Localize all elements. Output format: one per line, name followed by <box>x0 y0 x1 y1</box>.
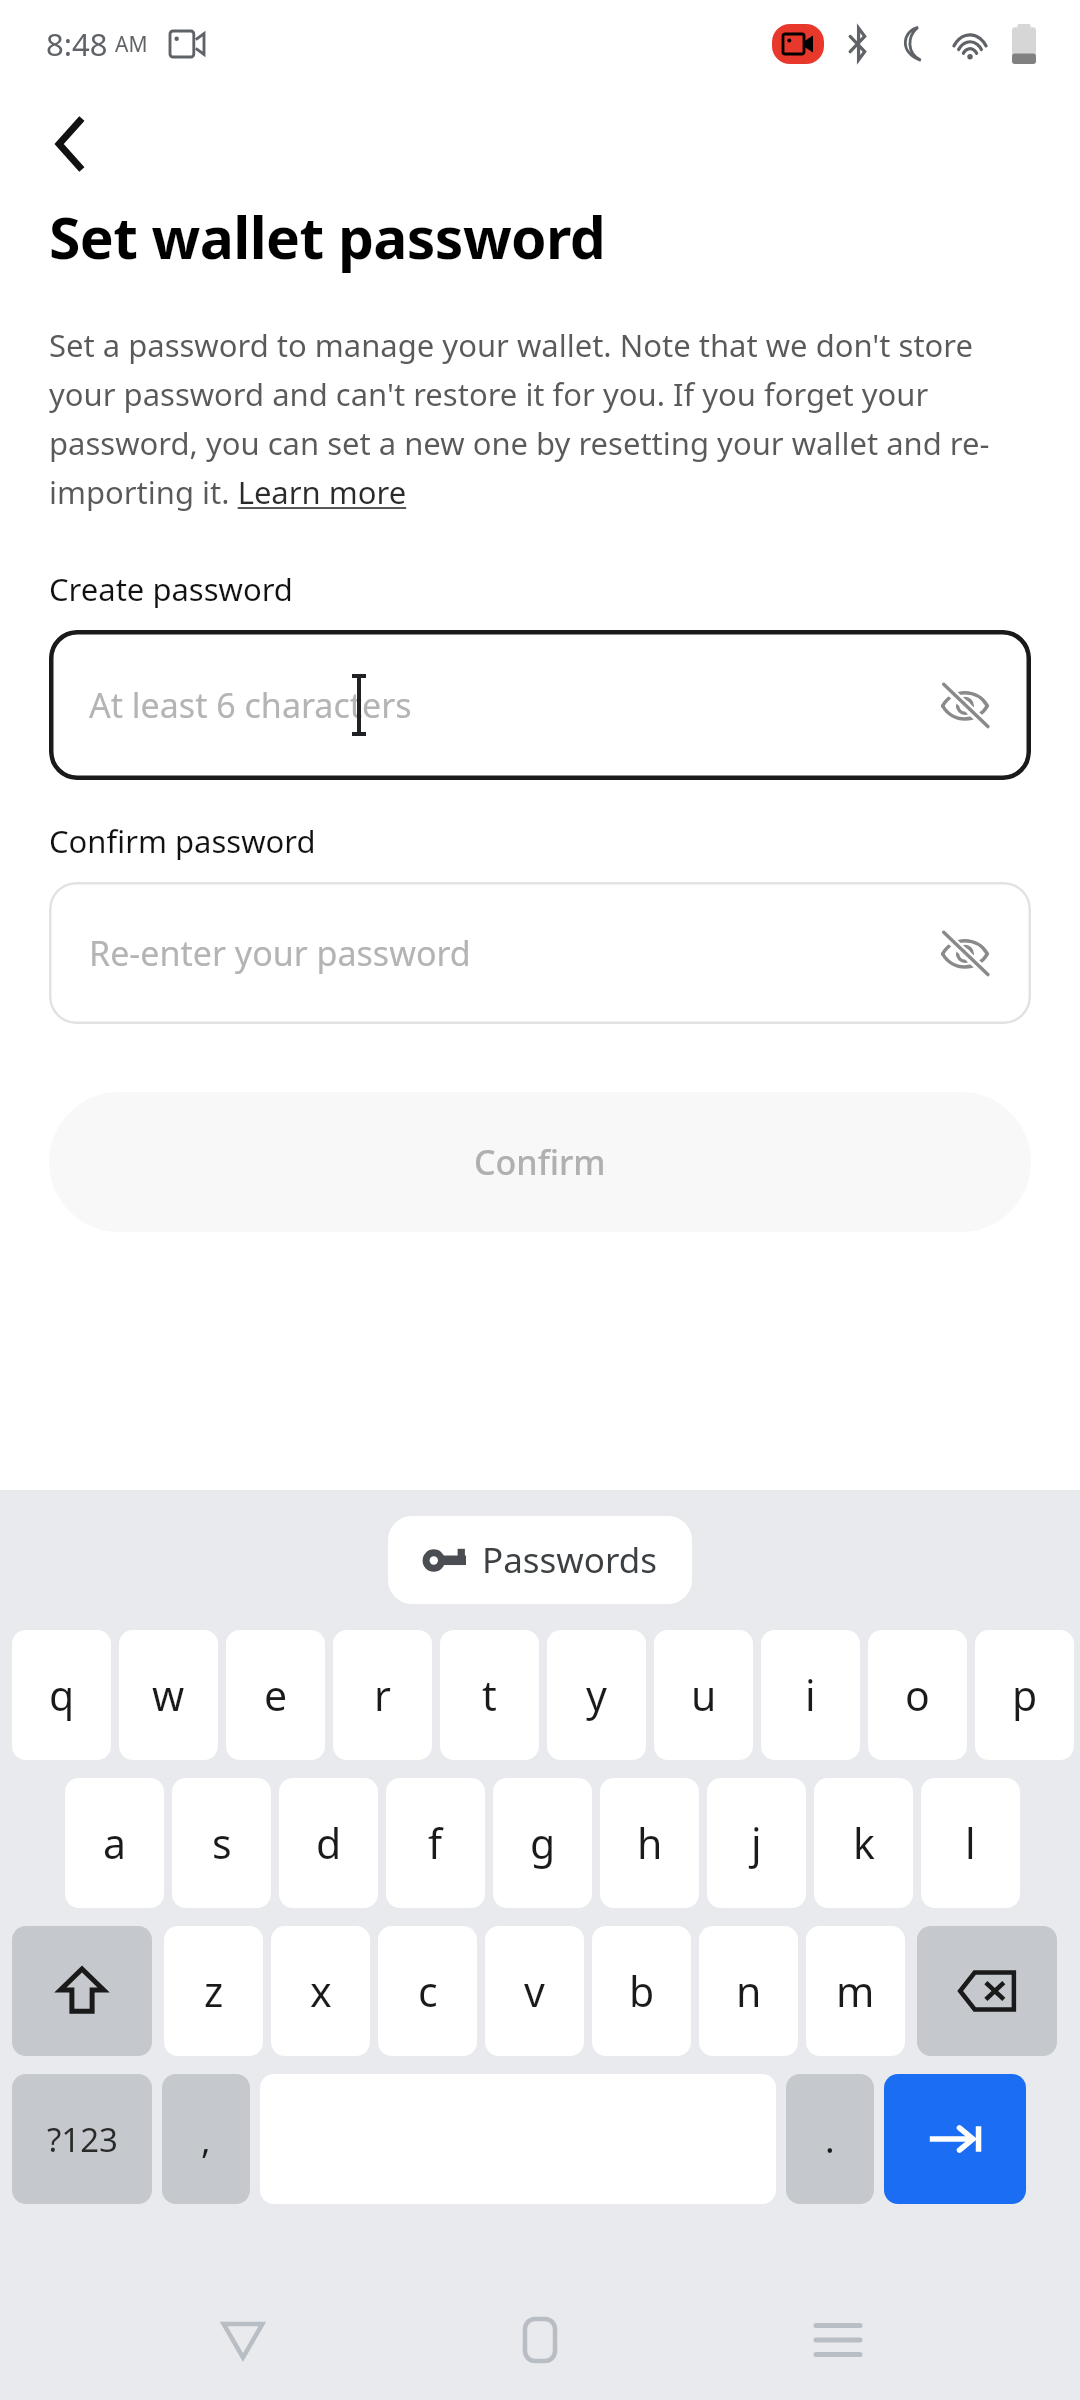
staticText: Confirm password <box>49 820 316 862</box>
staticText: Set wallet password <box>49 198 606 276</box>
button[interactable]: l <box>921 1778 1020 1908</box>
button[interactable]: v <box>485 1926 584 2056</box>
button[interactable]: Show password <box>923 663 1007 747</box>
button[interactable]: r <box>333 1630 432 1760</box>
staticText: . <box>825 2115 835 2164</box>
button[interactable]: i <box>761 1630 860 1760</box>
button[interactable]: d <box>279 1778 378 1908</box>
button[interactable]: w <box>119 1630 218 1760</box>
button[interactable]: m <box>806 1926 905 2056</box>
staticText: l <box>965 1815 976 1871</box>
staticText: Create password <box>49 568 293 610</box>
button[interactable]: f <box>386 1778 485 1908</box>
staticText: x <box>310 1963 332 2019</box>
button[interactable]: z <box>164 1926 263 2056</box>
button[interactable]: h <box>600 1778 699 1908</box>
staticText: p <box>1012 1667 1038 1723</box>
button[interactable]: a <box>65 1778 164 1908</box>
button[interactable]: s <box>172 1778 271 1908</box>
staticText: q <box>49 1667 75 1723</box>
staticText: i <box>805 1667 816 1723</box>
button[interactable]: Back <box>30 104 110 184</box>
button[interactable]: g <box>493 1778 592 1908</box>
button[interactable]: Passwords <box>388 1516 692 1604</box>
button[interactable]: Shift <box>12 1926 152 2056</box>
button[interactable]: Show password <box>923 911 1007 995</box>
button[interactable]: b <box>592 1926 691 2056</box>
staticText: z <box>204 1963 224 2019</box>
button[interactable]: ?123 <box>12 2074 152 2204</box>
staticText: v <box>524 1963 545 2019</box>
button[interactable]: j <box>707 1778 806 1908</box>
button[interactable]: y <box>547 1630 646 1760</box>
button[interactable]: n <box>699 1926 798 2056</box>
staticText: o <box>905 1667 930 1723</box>
button[interactable]: Next <box>884 2074 1026 2204</box>
button[interactable]: o <box>868 1630 967 1760</box>
staticText: g <box>530 1815 556 1871</box>
button[interactable]: Backspace <box>917 1926 1057 2056</box>
staticText: r <box>374 1667 391 1723</box>
button[interactable]: Home <box>485 2285 595 2395</box>
staticText: e <box>264 1667 288 1723</box>
staticText: f <box>428 1815 443 1871</box>
staticText: u <box>691 1667 717 1723</box>
staticText: At least 6 characters <box>89 682 412 728</box>
button[interactable]: p <box>975 1630 1074 1760</box>
staticText: a <box>103 1815 127 1871</box>
button[interactable]: Back <box>188 2285 298 2395</box>
staticText: m <box>836 1963 875 2019</box>
button[interactable]: q <box>12 1630 111 1760</box>
button[interactable]: k <box>814 1778 913 1908</box>
button[interactable]: u <box>654 1630 753 1760</box>
staticText: c <box>418 1963 438 2019</box>
staticText: Set a password to manage your wallet. No… <box>49 324 1038 514</box>
staticText: n <box>736 1963 762 2019</box>
staticText: Confirm <box>474 1139 606 1185</box>
staticText: h <box>637 1815 663 1871</box>
button[interactable]: . <box>786 2074 874 2204</box>
button[interactable]: Confirm <box>49 1092 1031 1232</box>
staticText: j <box>751 1815 762 1871</box>
button[interactable]: x <box>271 1926 370 2056</box>
button[interactable]: Recent apps <box>783 2285 893 2395</box>
button[interactable]: t <box>440 1630 539 1760</box>
staticText: s <box>212 1815 232 1871</box>
staticText: ?123 <box>47 2117 118 2162</box>
button[interactable]: e <box>226 1630 325 1760</box>
button[interactable]: At least 6 characters <box>49 630 1031 780</box>
staticText: k <box>853 1815 875 1871</box>
staticText: y <box>586 1667 607 1723</box>
button[interactable]: c <box>378 1926 477 2056</box>
staticText: Passwords <box>482 1536 658 1584</box>
staticText: t <box>482 1667 497 1723</box>
staticText: b <box>629 1963 655 2019</box>
staticText: , <box>201 2115 211 2164</box>
button[interactable]: , <box>162 2074 250 2204</box>
staticText: Re-enter your password <box>89 930 471 976</box>
staticText: AM <box>115 30 148 59</box>
staticText: w <box>152 1667 185 1723</box>
staticText: 8:48 <box>46 23 108 65</box>
staticText: d <box>316 1815 342 1871</box>
button[interactable]: Re-enter your password <box>49 882 1031 1024</box>
